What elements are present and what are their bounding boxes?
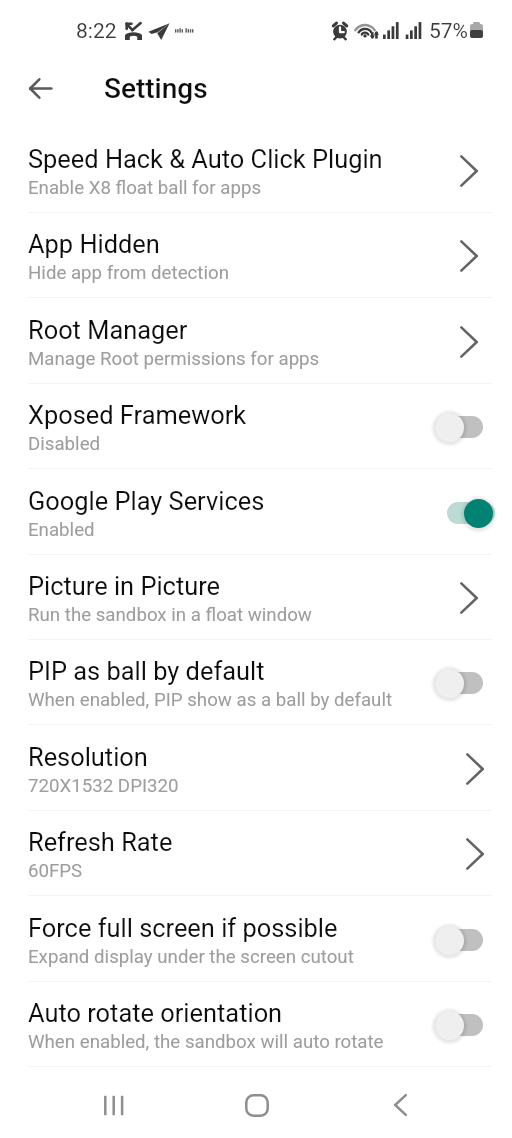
staticText: Resolution — [28, 742, 148, 772]
button[interactable]: Off — [430, 1008, 498, 1042]
staticText: Enable X8 float ball for apps — [28, 177, 262, 199]
staticText: App Hidden — [28, 229, 160, 259]
staticText: Manage Root permissions for apps — [28, 348, 320, 370]
button[interactable]: Recent apps — [82, 1069, 146, 1138]
button[interactable]: Home — [225, 1069, 289, 1138]
button[interactable]: Google Play Services — [0, 470, 512, 555]
button[interactable]: Speed Hack & Auto Click Plugin — [0, 128, 512, 213]
staticText: Force full screen if possible — [28, 913, 338, 943]
staticText: 60FPS — [28, 860, 83, 882]
staticText: When enabled, the sandbox will auto rota… — [28, 1031, 384, 1053]
staticText: Auto rotate orientation — [28, 998, 283, 1028]
staticText: Root Manager — [28, 315, 188, 345]
button[interactable]: App Hidden — [0, 213, 512, 298]
button[interactable]: Off — [430, 923, 498, 957]
staticText: Picture in Picture — [28, 571, 221, 601]
button[interactable]: Auto rotate orientation — [0, 982, 512, 1067]
staticText: When enabled, PIP show as a ball by defa… — [28, 689, 393, 711]
staticText: Disabled — [28, 433, 101, 455]
staticText: Hide app from detection — [28, 262, 229, 284]
staticText: Run the sandbox in a float window — [28, 604, 312, 626]
staticText: 57% — [429, 19, 468, 44]
button[interactable]: Back — [368, 1069, 432, 1138]
staticText: 720X1532 DPI320 — [28, 775, 179, 797]
button[interactable]: Refresh Rate — [0, 811, 512, 896]
button[interactable]: Off — [430, 410, 498, 444]
button[interactable]: Root Manager — [0, 299, 512, 384]
button[interactable]: On — [430, 496, 498, 530]
button[interactable]: Picture in Picture — [0, 555, 512, 640]
button[interactable]: PIP as ball by default — [0, 640, 512, 725]
button[interactable]: Off — [430, 666, 498, 700]
staticText: Enabled — [28, 519, 95, 541]
staticText: PIP as ball by default — [28, 656, 265, 686]
button[interactable]: Back — [16, 64, 64, 112]
staticText: Google Play Services — [28, 486, 265, 516]
button[interactable]: Resolution — [0, 726, 512, 811]
staticText: Expand display under the screen cutout — [28, 946, 354, 968]
staticText: Settings — [104, 72, 208, 105]
staticText: Xposed Framework — [28, 400, 247, 430]
staticText: Refresh Rate — [28, 827, 173, 857]
staticText: Speed Hack & Auto Click Plugin — [28, 144, 383, 174]
staticText: 8:22 — [76, 19, 117, 44]
button[interactable]: Xposed Framework — [0, 384, 512, 469]
button[interactable]: Force full screen if possible — [0, 897, 512, 982]
